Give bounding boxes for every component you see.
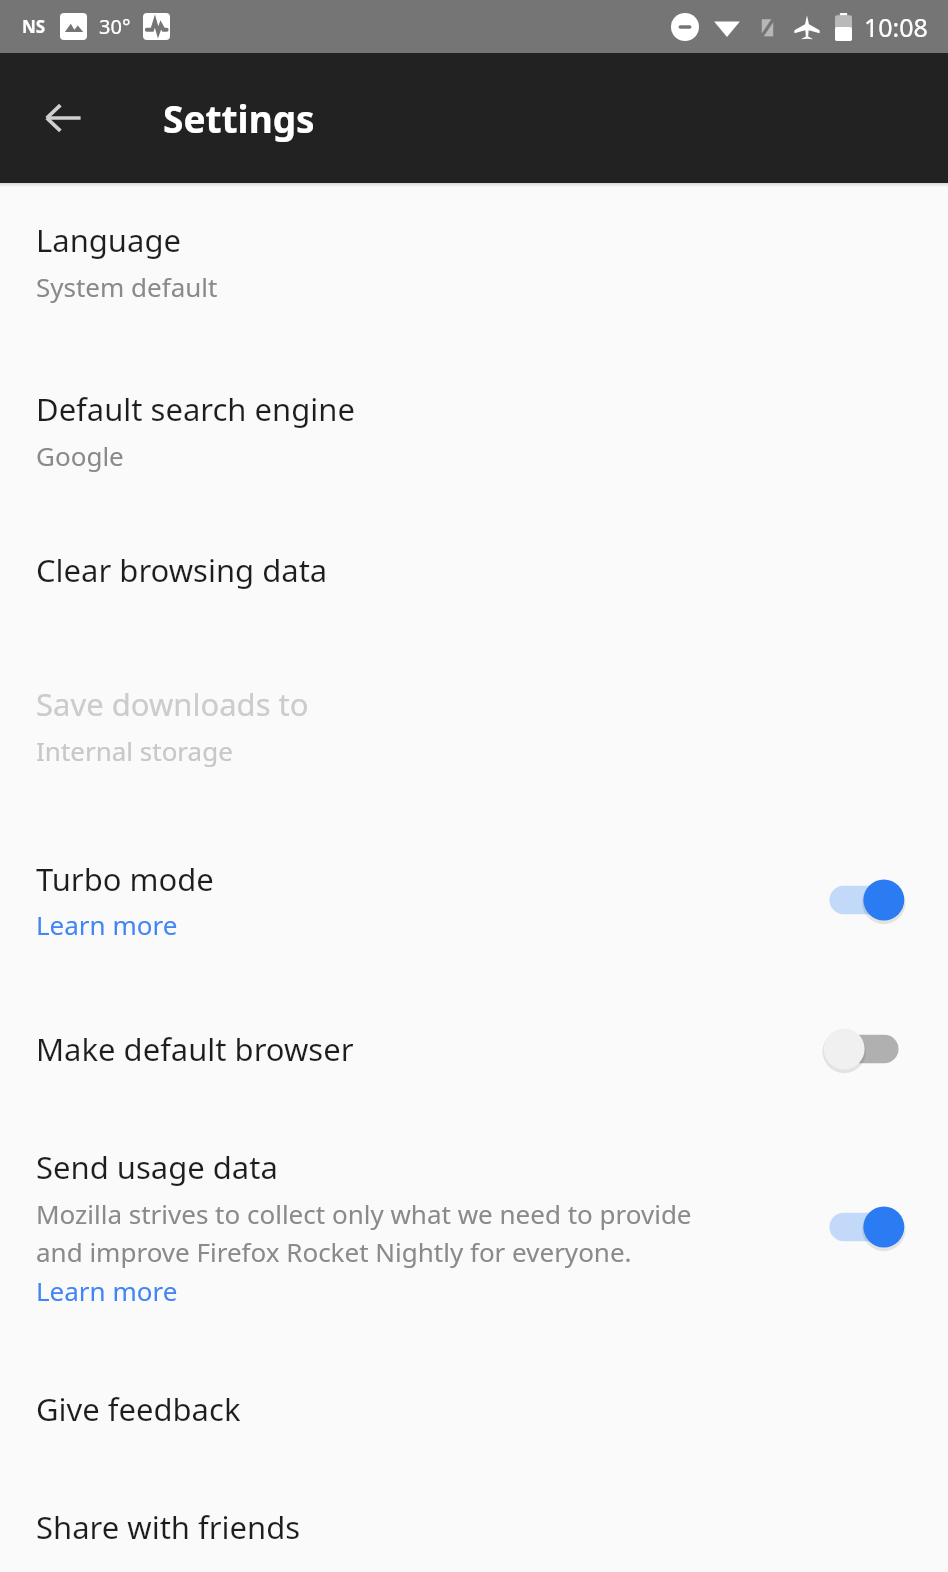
other: Off	[816, 1018, 912, 1080]
button[interactable]: Share with friends	[0, 1506, 948, 1548]
button[interactable]: Turbo mode	[0, 858, 948, 942]
staticText: Mozilla strives to collect only what we …	[36, 1196, 706, 1269]
other: On	[816, 1196, 912, 1258]
staticText: Turbo mode	[36, 858, 214, 900]
other: On	[816, 869, 912, 931]
button[interactable]: Language	[0, 187, 948, 304]
button[interactable]: Clear browsing data	[0, 549, 948, 591]
button[interactable]: Give feedback	[0, 1388, 948, 1430]
button[interactable]: Make default browser	[0, 1018, 948, 1080]
staticText: Make default browser	[36, 1028, 354, 1070]
staticText: Default search engine	[36, 388, 355, 430]
button[interactable]: Save downloads to	[0, 683, 948, 768]
staticText: Internal storage	[36, 733, 233, 768]
staticText: Clear browsing data	[36, 549, 328, 591]
staticText: Send usage data	[36, 1146, 278, 1188]
staticText: NS	[22, 15, 46, 38]
button[interactable]: Learn more	[36, 907, 178, 942]
button[interactable]: Default search engine	[0, 388, 948, 473]
staticText: Give feedback	[36, 1388, 241, 1430]
staticText: Google	[36, 438, 124, 473]
staticText: Language	[36, 219, 181, 261]
staticText: System default	[36, 269, 218, 304]
staticText: Save downloads to	[36, 683, 309, 725]
button[interactable]: Send usage data	[0, 1146, 948, 1308]
button[interactable]: Back	[15, 70, 111, 166]
staticText: 10:08	[864, 10, 928, 44]
staticText: Share with friends	[36, 1506, 301, 1548]
button[interactable]: Learn more	[36, 1273, 178, 1308]
staticText: 30°	[99, 13, 131, 40]
staticText: Settings	[163, 93, 315, 143]
